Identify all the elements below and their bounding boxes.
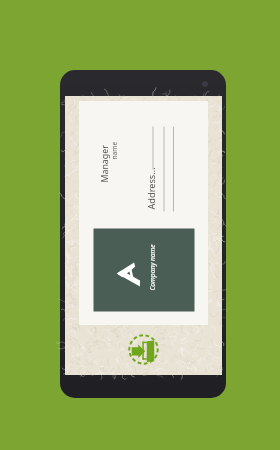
staticText: Address... <box>144 166 157 209</box>
staticText: Manager <box>98 144 110 182</box>
staticText: name <box>109 141 118 159</box>
button[interactable]: Log in <box>128 334 159 365</box>
button[interactable] <box>60 70 226 398</box>
staticText: Company name <box>147 243 156 290</box>
